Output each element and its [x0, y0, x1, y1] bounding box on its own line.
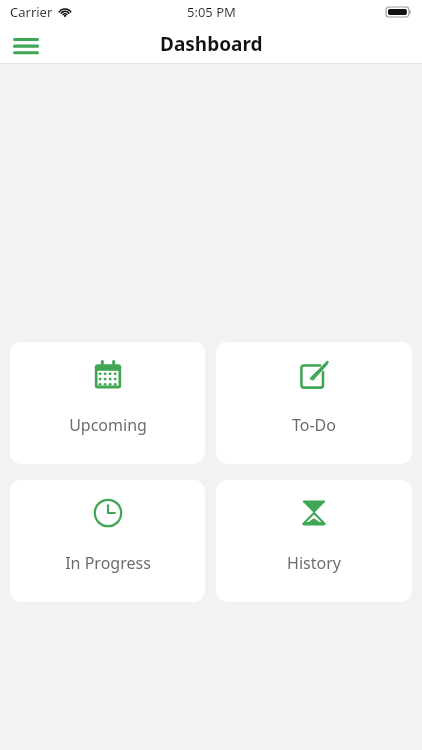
staticText: 5:05 PM	[187, 3, 236, 21]
button[interactable]: Upcoming	[10, 342, 205, 464]
button[interactable]: To-Do	[216, 342, 412, 464]
staticText: In Progress	[65, 552, 151, 574]
button[interactable]: History	[216, 480, 412, 602]
staticText: Upcoming	[69, 414, 147, 436]
staticText: Carrier	[10, 3, 53, 21]
button[interactable]: Open navigation menu	[4, 24, 48, 64]
staticText: To-Do	[292, 414, 336, 436]
staticText: Dashboard	[160, 31, 263, 57]
staticText: History	[287, 552, 341, 574]
button[interactable]: In Progress	[10, 480, 205, 602]
